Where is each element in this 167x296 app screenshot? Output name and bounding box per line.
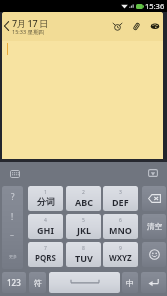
button[interactable]: 符 [29, 272, 46, 293]
button[interactable]: 5 [66, 214, 101, 239]
button[interactable]: 2 [66, 186, 101, 211]
button[interactable]: Enter [141, 272, 166, 293]
staticText: MNO [109, 224, 132, 236]
button[interactable]: 4 [28, 214, 63, 239]
staticText: 更多 [9, 254, 17, 259]
staticText: GHI [37, 224, 54, 236]
button[interactable]: Switch input method [7, 166, 22, 181]
staticText: 15:33 星期四 [12, 28, 44, 36]
staticText: ABC [75, 196, 93, 208]
staticText: PQRS [35, 252, 56, 263]
staticText: 8 [82, 245, 85, 252]
button[interactable]: Backspace [142, 186, 166, 211]
button[interactable]: 3 [103, 186, 138, 211]
staticText: 4 [44, 217, 47, 224]
button[interactable]: 9 [103, 242, 138, 267]
staticText: DEF [112, 196, 129, 208]
button[interactable]: 7 [28, 242, 63, 267]
button[interactable]: Attach file [129, 19, 143, 33]
staticText: 5 [82, 217, 85, 224]
staticText: JKL [77, 224, 91, 236]
staticText: 2 [82, 189, 85, 196]
button[interactable]: 8 [66, 242, 101, 267]
staticText: TUV [75, 252, 93, 264]
staticText: 15:36 [145, 1, 165, 11]
staticText: 123 [7, 277, 21, 288]
staticText: 符 [34, 278, 42, 288]
staticText: 1 [44, 189, 47, 196]
staticText: WXYZ [109, 252, 132, 263]
staticText: 清空 [147, 222, 162, 231]
staticText: 3 [119, 189, 122, 196]
staticText: 分词 [37, 196, 55, 207]
button[interactable]: 清空 [142, 214, 166, 239]
button[interactable]: Reminder [110, 19, 124, 33]
button[interactable]: Space [49, 272, 120, 293]
staticText: 7月 17 日 [12, 17, 49, 29]
button[interactable]: Change colour [148, 19, 162, 33]
button[interactable]: 123 [2, 272, 26, 293]
staticText: ? [11, 191, 15, 202]
button[interactable]: 中 [122, 272, 138, 293]
staticText: ! [11, 211, 14, 222]
button[interactable]: 1 [28, 186, 63, 211]
button[interactable]: Emoji [142, 242, 166, 267]
staticText: 6 [119, 217, 122, 224]
staticText: ~ [10, 231, 15, 241]
staticText: 9 [119, 245, 122, 252]
button[interactable]: 6 [103, 214, 138, 239]
button[interactable]: Back [1, 15, 12, 36]
button[interactable]: Punctuation [2, 186, 23, 269]
button[interactable]: Hide keyboard [145, 165, 160, 180]
staticText: 7 [44, 245, 47, 252]
staticText: 中 [126, 278, 134, 288]
